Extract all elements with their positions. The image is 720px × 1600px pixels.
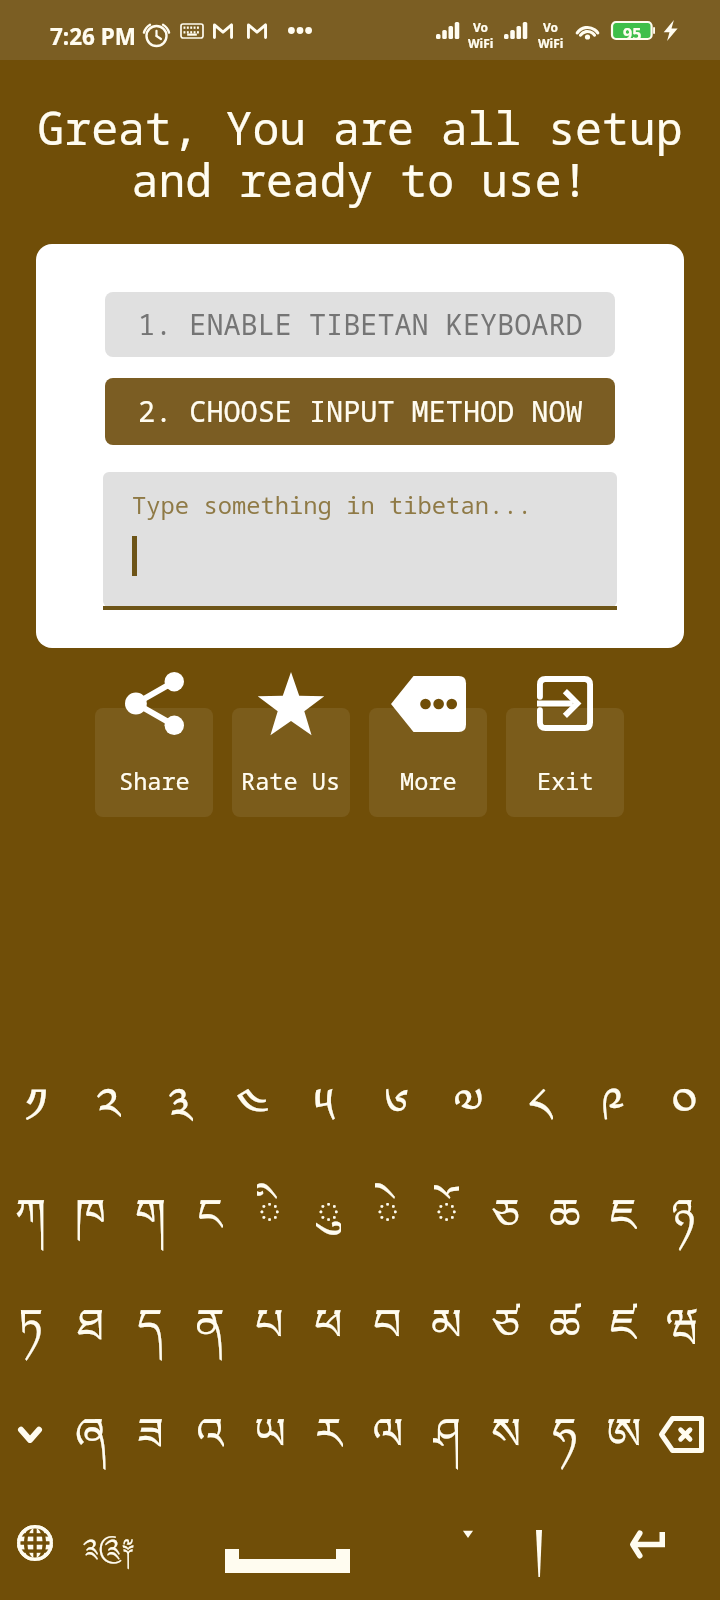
- button[interactable]: ཙ: [476, 1275, 535, 1367]
- staticText: ཛ: [610, 1275, 637, 1367]
- staticText: ཁ: [75, 1165, 106, 1257]
- button[interactable]: 2. CHOOSE INPUT METHOD NOW: [105, 378, 615, 445]
- staticText: Share: [119, 765, 190, 797]
- button[interactable]: Share: [95, 708, 213, 817]
- button[interactable]: ༧: [432, 1052, 504, 1138]
- staticText: ཉ: [671, 1165, 695, 1257]
- button[interactable]: ༡: [0, 1052, 72, 1138]
- button[interactable]: ཆ: [535, 1165, 594, 1257]
- button[interactable]: Type something in tibetan...: [103, 472, 617, 610]
- staticText: 2. CHOOSE INPUT METHOD NOW: [138, 392, 583, 431]
- button[interactable]: ༠: [648, 1052, 720, 1138]
- button[interactable]: ༥: [288, 1052, 360, 1138]
- staticText: ཡ: [254, 1384, 286, 1476]
- button[interactable]: ཡ: [240, 1384, 299, 1476]
- staticText: ཙ: [492, 1275, 520, 1367]
- button[interactable]: ད: [120, 1275, 180, 1367]
- staticText: ག: [135, 1165, 166, 1257]
- button[interactable]: Change language: [5, 1513, 65, 1573]
- button[interactable]: ༉༊༈: [69, 1519, 149, 1579]
- staticText: ༨: [528, 1052, 553, 1138]
- button[interactable]: ཏ: [0, 1275, 60, 1367]
- staticText: ཤ: [433, 1384, 461, 1476]
- button[interactable]: པ: [240, 1275, 299, 1367]
- button[interactable]: ༢: [72, 1052, 144, 1138]
- staticText: འ: [196, 1384, 224, 1476]
- button[interactable]: ར: [299, 1384, 358, 1476]
- staticText: More: [400, 765, 457, 797]
- button[interactable]: [509, 1523, 569, 1583]
- staticText: ཕ: [314, 1275, 343, 1367]
- staticText: ༡: [24, 1052, 48, 1138]
- button[interactable]: Space: [215, 1535, 360, 1587]
- staticText: 95: [623, 23, 642, 45]
- button[interactable]: ཨ: [594, 1384, 653, 1476]
- button[interactable]: ཤ: [417, 1384, 476, 1476]
- staticText: བ: [373, 1275, 402, 1367]
- staticText: ན: [195, 1275, 225, 1367]
- staticText: ༤: [236, 1052, 269, 1138]
- button[interactable]: ༣: [144, 1052, 216, 1138]
- button[interactable]: ི: [240, 1165, 299, 1257]
- staticText: WiFi: [538, 35, 564, 51]
- button[interactable]: ཚ: [535, 1275, 594, 1367]
- button[interactable]: ཉ: [653, 1165, 712, 1257]
- staticText: ང: [197, 1165, 223, 1257]
- button[interactable]: ན: [180, 1275, 240, 1367]
- staticText: 7:26 PM: [50, 21, 136, 52]
- button[interactable]: ༦: [360, 1052, 432, 1138]
- staticText: ཅ: [492, 1165, 520, 1257]
- button[interactable]: ཛ: [594, 1275, 653, 1367]
- button[interactable]: ཕ: [299, 1275, 358, 1367]
- staticText: ས: [491, 1384, 521, 1476]
- staticText: ཧ: [552, 1384, 577, 1476]
- button[interactable]: ཅ: [476, 1165, 535, 1257]
- button[interactable]: ༨: [504, 1052, 576, 1138]
- staticText: ཀ: [15, 1165, 46, 1257]
- button[interactable]: 1. ENABLE TIBETAN KEYBOARD: [105, 292, 615, 357]
- button[interactable]: ཁ: [60, 1165, 120, 1257]
- staticText: ༥: [313, 1052, 335, 1138]
- button[interactable]: ག: [120, 1165, 180, 1257]
- button[interactable]: ང: [180, 1165, 240, 1257]
- button[interactable]: བ: [358, 1275, 417, 1367]
- button[interactable]: Exit: [506, 708, 624, 817]
- staticText: ཝ: [666, 1275, 699, 1367]
- button[interactable]: ཀ: [0, 1165, 60, 1257]
- staticText: ཨ: [606, 1384, 642, 1476]
- staticText: ོ: [434, 1165, 459, 1257]
- staticText: ཚ: [549, 1275, 581, 1367]
- button[interactable]: Backspace: [653, 1384, 712, 1476]
- button[interactable]: ཇ: [594, 1165, 653, 1257]
- staticText: WiFi: [468, 35, 494, 51]
- staticText: Exit: [537, 765, 594, 797]
- button[interactable]: ེ: [358, 1165, 417, 1257]
- button[interactable]: Enter: [617, 1514, 677, 1574]
- staticText: ེ: [375, 1165, 400, 1257]
- button[interactable]: Shift: [0, 1384, 60, 1476]
- staticText: ུ: [316, 1165, 341, 1257]
- button[interactable]: [438, 1504, 498, 1564]
- button[interactable]: ོ: [417, 1165, 476, 1257]
- button[interactable]: ལ: [358, 1384, 417, 1476]
- button[interactable]: ཐ: [60, 1275, 120, 1367]
- staticText: ལ: [372, 1384, 404, 1476]
- button[interactable]: ས: [476, 1384, 535, 1476]
- button[interactable]: མ: [417, 1275, 476, 1367]
- staticText: ཆ: [549, 1165, 581, 1257]
- button[interactable]: འ: [180, 1384, 240, 1476]
- staticText: ཇ: [610, 1165, 637, 1257]
- staticText: ར: [315, 1384, 343, 1476]
- staticText: 1. ENABLE TIBETAN KEYBOARD: [138, 305, 583, 344]
- button[interactable]: ཧ: [535, 1384, 594, 1476]
- button[interactable]: ཟ: [120, 1384, 180, 1476]
- button[interactable]: More: [369, 708, 487, 817]
- button[interactable]: ༤: [216, 1052, 288, 1138]
- button[interactable]: ཝ: [653, 1275, 712, 1367]
- button[interactable]: ུ: [299, 1165, 358, 1257]
- button[interactable]: ༩: [576, 1052, 648, 1138]
- button[interactable]: Rate Us: [232, 708, 350, 817]
- staticText: Vo: [543, 19, 559, 35]
- staticText: Type something in tibetan...: [132, 489, 532, 521]
- button[interactable]: ཞ: [60, 1384, 120, 1476]
